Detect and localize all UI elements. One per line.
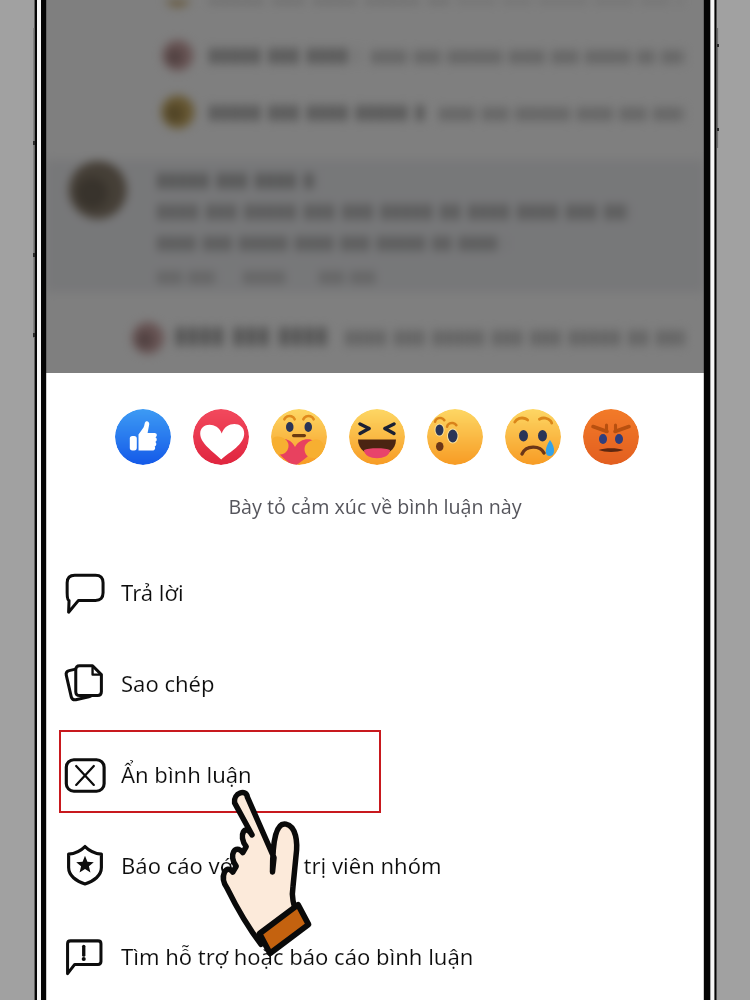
button[interactable]: Ẩn bình luận bbox=[46, 728, 704, 819]
staticText: Báo cáo với quản trị viên nhóm bbox=[121, 850, 442, 880]
button[interactable]: Haha bbox=[349, 409, 405, 465]
button[interactable]: Báo cáo với quản trị viên nhóm bbox=[46, 819, 704, 910]
button[interactable]: Trả lời bbox=[46, 546, 704, 637]
button[interactable]: Care bbox=[271, 409, 327, 465]
other: Tap pointer bbox=[218, 793, 318, 945]
staticText: Sao chép bbox=[121, 668, 215, 698]
button[interactable]: Sad bbox=[505, 409, 561, 465]
button[interactable]: Wow bbox=[427, 409, 483, 465]
staticText: Tìm hỗ trợ hoặc báo cáo bình luận bbox=[121, 941, 474, 971]
button[interactable]: Angry bbox=[583, 409, 639, 465]
button[interactable]: Love bbox=[193, 409, 249, 465]
button[interactable]: Tìm hỗ trợ hoặc báo cáo bình luận bbox=[46, 910, 704, 1000]
staticText: Ẩn bình luận bbox=[121, 759, 252, 789]
button[interactable]: Sao chép bbox=[46, 637, 704, 728]
staticText: Trả lời bbox=[121, 577, 184, 607]
button[interactable]: Like bbox=[115, 409, 171, 465]
staticText: Bày tỏ cảm xúc về bình luận này bbox=[46, 493, 704, 520]
